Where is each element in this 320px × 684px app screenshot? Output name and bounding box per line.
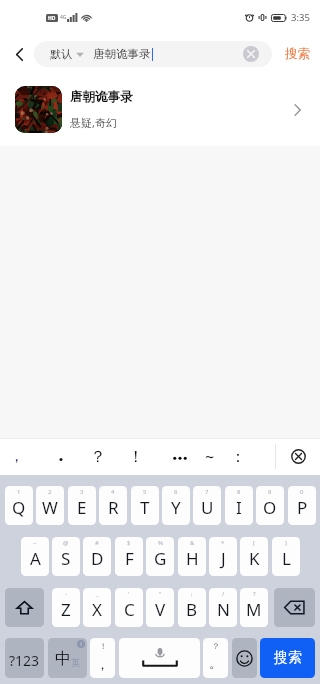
staticText: 悬疑,奇幻 — [70, 115, 117, 130]
button[interactable]: T — [131, 486, 159, 525]
button[interactable]: I — [225, 486, 253, 525]
button[interactable]: Q — [5, 486, 33, 525]
button[interactable]: Search — [260, 638, 315, 678]
button[interactable]: ： — [221, 438, 255, 475]
staticText: 0 — [300, 488, 304, 496]
button[interactable]: 搜索 — [275, 34, 320, 73]
button[interactable] — [45, 438, 79, 475]
button[interactable]: 默认 — [34, 41, 272, 67]
staticText: ！ — [99, 641, 107, 651]
button[interactable]: F — [115, 537, 143, 576]
staticText: 5 — [143, 488, 147, 496]
staticText: - — [65, 590, 67, 598]
staticText: 英 — [71, 657, 80, 668]
staticText: B — [186, 598, 198, 621]
staticText: 9 — [268, 488, 272, 496]
staticText: # — [95, 539, 99, 547]
button[interactable]: Clear text — [240, 43, 262, 65]
button[interactable]: R — [99, 486, 127, 525]
button[interactable]: Period — [203, 638, 228, 678]
staticText: W — [42, 496, 58, 519]
staticText: N — [217, 598, 230, 621]
staticText: ; — [191, 590, 193, 598]
button[interactable]: K — [240, 537, 268, 576]
staticText: 2 — [48, 488, 52, 496]
button[interactable]: H — [178, 537, 206, 576]
button[interactable]: ！ — [119, 438, 153, 475]
staticText: $ — [127, 539, 131, 547]
staticText: / — [222, 590, 225, 598]
staticText: H — [186, 547, 199, 570]
button[interactable]: N — [209, 588, 237, 627]
button[interactable]: D — [83, 537, 111, 576]
staticText: * — [221, 539, 225, 547]
staticText: 6 — [174, 488, 178, 496]
button[interactable]: Emoji — [232, 638, 257, 678]
staticText: ： — [230, 447, 246, 467]
button[interactable]: ？ — [81, 438, 115, 475]
button[interactable]: G — [146, 537, 174, 576]
staticText: U — [201, 496, 214, 519]
staticText: T — [140, 496, 150, 519]
staticText: E — [77, 496, 87, 519]
staticText: _ — [96, 590, 99, 598]
button[interactable]: J — [209, 537, 237, 576]
staticText: ~ — [33, 539, 37, 547]
staticText: ~ — [205, 446, 215, 468]
button[interactable]: A — [21, 537, 49, 576]
staticText: Q — [12, 496, 26, 519]
staticText: ？ — [90, 447, 106, 467]
staticText: HD — [48, 15, 56, 22]
button[interactable]: Shift — [5, 588, 44, 627]
staticText: Z — [61, 598, 71, 621]
staticText: & — [190, 539, 195, 547]
staticText: D — [91, 547, 104, 570]
button[interactable]: X — [83, 588, 111, 627]
button[interactable]: C — [115, 588, 143, 627]
staticText: L — [282, 547, 291, 570]
staticText: C — [124, 598, 135, 621]
staticText: 4 — [111, 488, 115, 496]
button[interactable]: Comma — [90, 638, 115, 678]
staticText: 中 — [55, 649, 71, 669]
button[interactable]: Hide keyboard — [277, 438, 320, 475]
button[interactable]: ?123 — [5, 638, 44, 678]
button[interactable]: Backspace — [274, 588, 315, 627]
button[interactable]: O — [256, 486, 284, 525]
button[interactable]: L — [272, 537, 300, 576]
staticText: ， — [9, 447, 24, 466]
staticText: 唐朝诡事录 — [93, 47, 151, 61]
staticText: 唐朝诡事录 — [70, 89, 133, 105]
staticText: ， — [96, 656, 109, 672]
button[interactable]: M — [240, 588, 268, 627]
button[interactable]: P — [288, 486, 316, 525]
staticText: % — [158, 539, 163, 547]
button[interactable]: 唐朝诡事录 — [0, 73, 320, 146]
button[interactable]: Back — [6, 41, 32, 67]
button[interactable]: ~ — [193, 438, 227, 475]
staticText: M — [246, 598, 262, 621]
button[interactable]: V — [146, 588, 174, 627]
button[interactable]: ， — [3, 438, 37, 475]
staticText: 搜索 — [274, 649, 302, 667]
button[interactable]: S — [52, 537, 80, 576]
button[interactable]: Switch Chinese English — [48, 638, 87, 678]
button[interactable]: Z — [52, 588, 80, 627]
button[interactable]: Space — [119, 638, 200, 678]
staticText: ? — [253, 590, 256, 598]
staticText: 4G — [60, 14, 67, 21]
button[interactable] — [163, 438, 197, 475]
button[interactable]: E — [68, 486, 96, 525]
staticText: 1 — [17, 488, 21, 496]
staticText: ！ — [128, 447, 144, 467]
button[interactable]: Y — [162, 486, 190, 525]
staticText: 7 — [205, 488, 209, 496]
staticText: O — [263, 496, 277, 519]
button[interactable]: B — [178, 588, 206, 627]
staticText: ) — [285, 539, 287, 547]
button[interactable]: U — [193, 486, 221, 525]
staticText: X — [92, 598, 102, 621]
staticText: A — [30, 547, 41, 570]
button[interactable]: W — [36, 486, 64, 525]
staticText: 3:35 — [291, 11, 310, 24]
